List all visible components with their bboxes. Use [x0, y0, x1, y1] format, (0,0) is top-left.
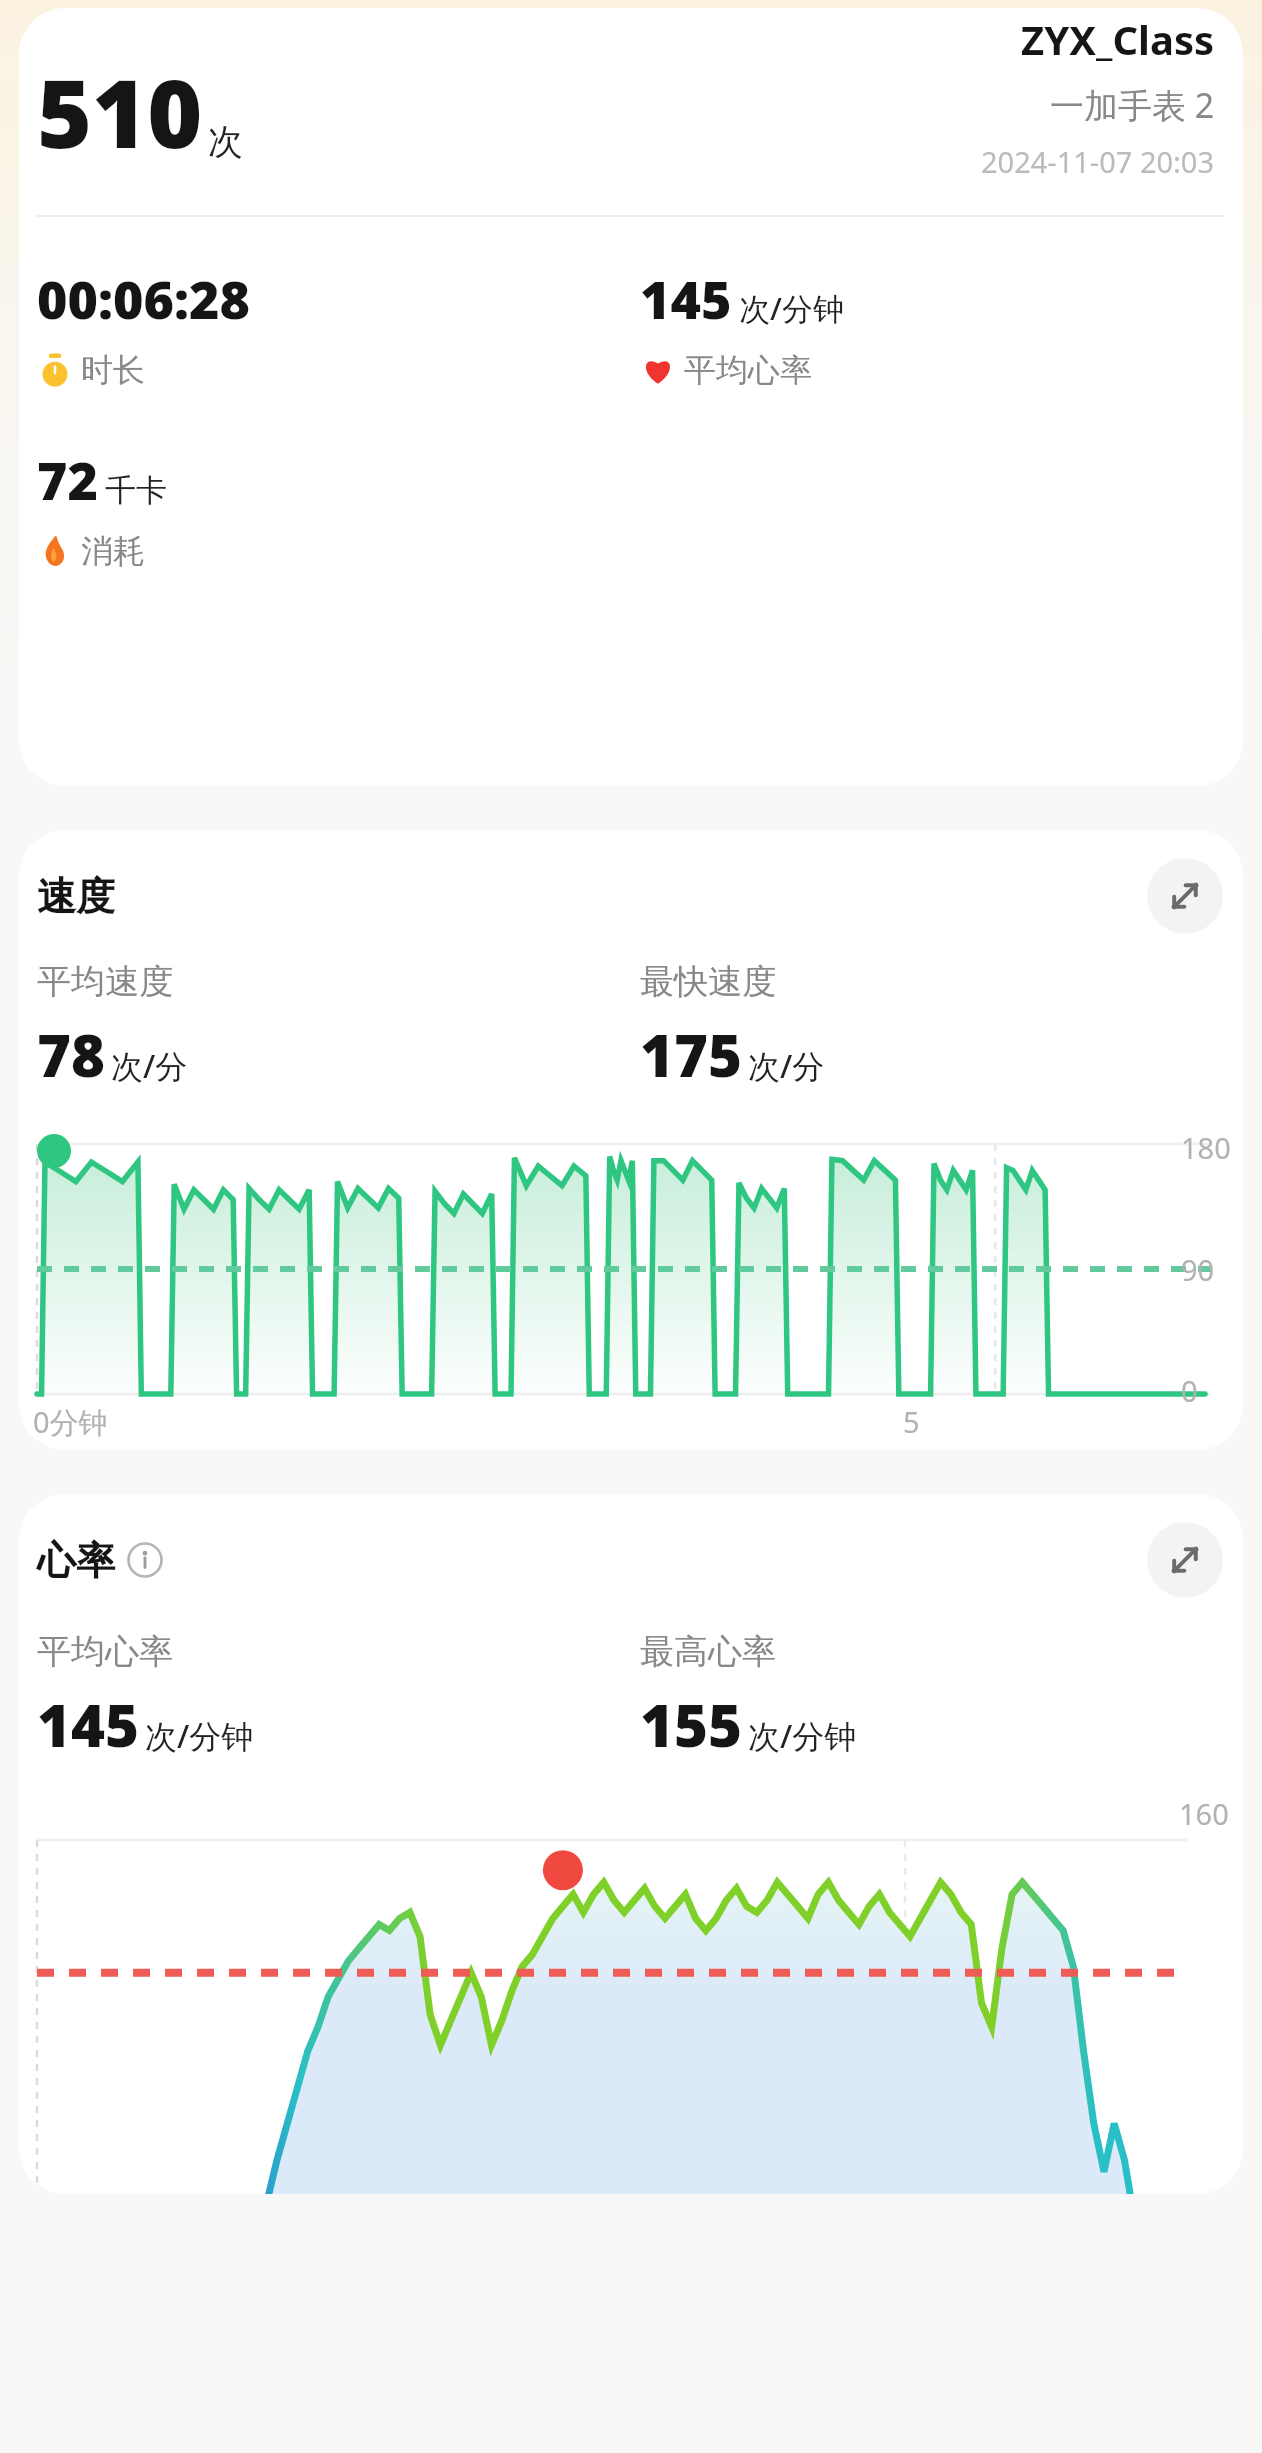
button[interactable]: 510: [19, 8, 1243, 786]
staticText: 5: [903, 1402, 920, 1441]
staticText: 速度: [37, 872, 115, 921]
staticText: 78: [37, 1015, 105, 1094]
staticText: 510: [37, 48, 203, 176]
staticText: 0: [1181, 1371, 1198, 1410]
staticText: 145: [640, 263, 732, 334]
button[interactable]: Heart rate info: [125, 1540, 165, 1580]
staticText: 次/分钟: [145, 1714, 254, 1758]
button[interactable]: Expand chart: [1147, 1522, 1223, 1598]
staticText: 次/分钟: [739, 287, 844, 329]
staticText: 160: [1179, 1794, 1229, 1833]
staticText: 平均心率: [684, 350, 812, 390]
button[interactable]: 心率: [19, 1494, 1243, 2194]
staticText: 0分钟: [33, 1402, 108, 1442]
staticText: 一加手表 2: [1050, 82, 1215, 128]
staticText: 消耗: [81, 531, 145, 571]
staticText: 145: [37, 1685, 139, 1764]
staticText: ZYX_Class: [1021, 12, 1215, 66]
staticText: 72: [37, 444, 98, 515]
button[interactable]: Expand chart: [1147, 858, 1223, 934]
staticText: 90: [1181, 1250, 1215, 1289]
staticText: 次/分: [111, 1044, 188, 1088]
staticText: 2024-11-07 20:03: [981, 142, 1215, 181]
staticText: 最高心率: [640, 1630, 776, 1673]
staticText: 最快速度: [640, 960, 776, 1003]
button[interactable]: 速度: [19, 830, 1243, 1450]
staticText: 175: [640, 1015, 742, 1094]
staticText: 时长: [81, 350, 145, 390]
staticText: 次/分: [748, 1044, 825, 1088]
staticText: 次/分钟: [748, 1714, 857, 1758]
staticText: 155: [640, 1685, 742, 1764]
staticText: 平均心率: [37, 1630, 173, 1673]
staticText: 180: [1181, 1128, 1231, 1167]
staticText: 平均速度: [37, 960, 173, 1003]
staticText: 00:06:28: [37, 263, 250, 334]
staticText: 次: [208, 120, 243, 164]
staticText: 千卡: [105, 471, 167, 510]
staticText: 心率: [37, 1536, 115, 1585]
